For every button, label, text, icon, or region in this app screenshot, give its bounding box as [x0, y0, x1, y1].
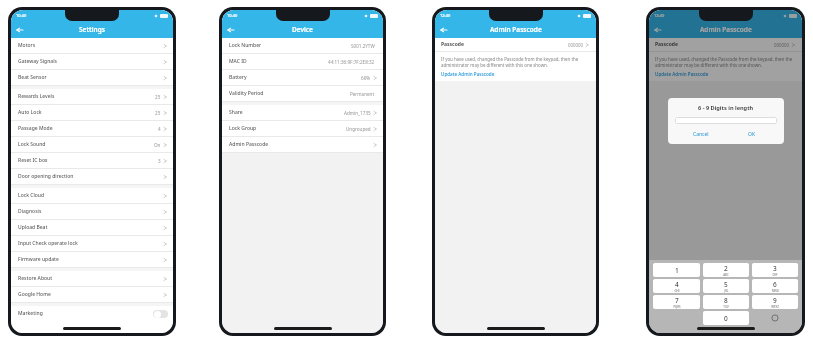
staticText: 000000 — [568, 42, 584, 48]
staticText: If you have used, changed the Passcode f… — [655, 56, 796, 68]
button[interactable]: Admin Passcode — [222, 137, 383, 152]
button[interactable]: 1 — [653, 263, 700, 277]
button[interactable]: Google Home — [11, 287, 173, 302]
staticText: 5 — [724, 280, 728, 289]
staticText: Battery — [229, 74, 247, 81]
staticText: 4 — [158, 126, 161, 132]
button[interactable]: Backspace — [752, 311, 798, 325]
staticText: 4 — [675, 280, 679, 289]
staticText: Permanent — [350, 91, 375, 97]
staticText: 44:11:36:9F:7F:2E8:32 — [328, 59, 375, 65]
button[interactable]: Input Check operate lock — [11, 236, 173, 251]
staticText: Input Check operate lock — [18, 240, 78, 247]
staticText: Admin_1735 — [344, 110, 371, 116]
button[interactable]: 9 — [752, 295, 798, 309]
button[interactable]: Lock Cloud — [11, 188, 173, 203]
staticText: Update Admin Passcode — [655, 71, 709, 77]
button[interactable]: Auto Lock — [11, 105, 173, 120]
staticText: GHI — [674, 289, 680, 293]
button[interactable]: Restore About — [11, 271, 173, 286]
button[interactable]: Back — [14, 24, 26, 36]
button[interactable]: 8 — [703, 295, 749, 309]
button[interactable]: 3 — [752, 263, 798, 277]
staticText: 66% — [361, 75, 371, 81]
staticText: 7 — [675, 296, 679, 305]
staticText: Beat Sensor — [18, 74, 47, 81]
button[interactable]: Motors — [11, 38, 173, 53]
button[interactable]: 6 — [752, 279, 798, 293]
staticText: OK — [748, 131, 756, 138]
staticText: 12:40 — [440, 13, 451, 18]
button[interactable]: Diagnosis — [11, 204, 173, 219]
staticText: ABC — [723, 273, 729, 277]
staticText: Auto Lock — [18, 109, 42, 116]
button[interactable]: 5 — [703, 279, 749, 293]
button[interactable]: Gateway Signals — [11, 54, 173, 69]
button[interactable]: Lock Number — [222, 38, 383, 53]
button[interactable]: Share — [222, 105, 383, 120]
staticText: On — [154, 142, 161, 148]
staticText: 10:40 — [16, 13, 27, 18]
staticText: JKL — [724, 289, 729, 293]
staticText: S001.2YTW — [351, 43, 375, 49]
button[interactable]: Beat Sensor — [11, 70, 173, 85]
staticText: Restore About — [18, 275, 53, 282]
button[interactable]: Upload Beat — [11, 220, 173, 235]
staticText: Gateway Signals — [18, 58, 57, 65]
button[interactable]: Update Admin Passcode — [655, 71, 709, 77]
staticText: 2 — [724, 264, 728, 273]
staticText: 10:40 — [227, 13, 238, 18]
button[interactable]: Back — [438, 24, 450, 36]
staticText: 1 — [675, 266, 679, 275]
staticText: Share — [229, 109, 243, 116]
button[interactable]: 0 — [703, 311, 749, 325]
staticText: Validity Period — [229, 90, 264, 97]
button[interactable]: 7 — [653, 295, 700, 309]
staticText: Marketing — [18, 310, 43, 317]
button[interactable]: Validity Period — [222, 86, 383, 101]
button[interactable]: Back — [225, 24, 237, 36]
button[interactable]: Lock Sound — [11, 137, 173, 152]
staticText: 3 — [158, 158, 161, 164]
staticText: DEF — [772, 273, 778, 277]
staticText: Google Home — [18, 291, 51, 298]
staticText: TUV — [723, 305, 729, 309]
staticText: Device — [292, 25, 313, 34]
staticText: Reset IC box — [18, 157, 48, 164]
staticText: Update Admin Passcode — [441, 71, 495, 77]
staticText: Passcode — [655, 41, 678, 48]
staticText: Motors — [18, 42, 36, 49]
staticText: Lock Sound — [18, 141, 46, 148]
staticText: 12:40 — [654, 13, 665, 18]
staticText: Firmware update — [18, 256, 59, 263]
button[interactable]: OK — [726, 130, 777, 138]
staticText: Settings — [79, 25, 105, 34]
staticText: 25 — [155, 110, 161, 116]
staticText: 9 — [773, 296, 777, 305]
button[interactable]: MAC ID — [222, 54, 383, 69]
button[interactable]: Firmware update — [11, 252, 173, 267]
button[interactable]: Back — [652, 24, 664, 36]
staticText: 000000 — [774, 42, 790, 48]
button[interactable]: Passage Mode — [11, 121, 173, 136]
staticText: Ungrouped — [346, 126, 371, 132]
button[interactable]: Door opening direction — [11, 169, 173, 184]
button[interactable]: 4 — [653, 279, 700, 293]
button[interactable]: Rewards Levels — [11, 89, 173, 104]
button[interactable]: Update Admin Passcode — [441, 71, 495, 77]
staticText: Lock Number — [229, 42, 262, 49]
button[interactable]: Battery — [222, 70, 383, 85]
button[interactable]: Lock Group — [222, 121, 383, 136]
staticText: Door opening direction — [18, 173, 74, 180]
button[interactable]: Reset IC box — [11, 153, 173, 168]
button[interactable]: 2 — [703, 263, 749, 277]
staticText: WXYZ — [771, 305, 779, 309]
staticText: 6 — [773, 280, 777, 289]
staticText: Admin Passcode — [490, 25, 542, 34]
staticText: 3 — [773, 264, 777, 273]
button[interactable] — [675, 117, 777, 124]
staticText: 0 — [724, 314, 728, 323]
staticText: Rewards Levels — [18, 93, 55, 100]
button[interactable]: Marketing — [11, 306, 173, 321]
button[interactable]: Cancel — [675, 130, 726, 138]
